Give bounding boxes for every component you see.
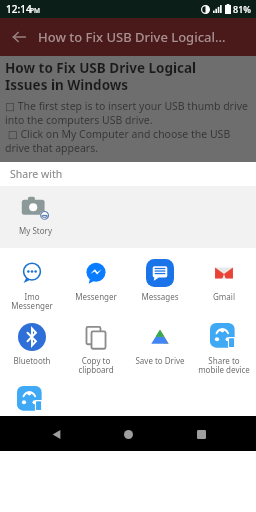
staticText: Copy to clipboard bbox=[78, 355, 114, 376]
button[interactable]: Back bbox=[0, 18, 38, 56]
button[interactable]: My Story bbox=[6, 190, 64, 238]
button[interactable]: Share to mobile device bbox=[192, 320, 256, 378]
staticText: PM bbox=[30, 6, 40, 15]
staticText: Bluetooth bbox=[13, 355, 51, 366]
button[interactable]: SHAREit bbox=[17, 386, 47, 416]
button[interactable]: Messages bbox=[128, 256, 192, 304]
staticText: How to Fix USB Drive Logical… bbox=[38, 28, 226, 46]
staticText: 12:14 bbox=[6, 2, 32, 16]
button[interactable]: Messenger bbox=[64, 256, 128, 304]
button[interactable]: Bluetooth bbox=[0, 320, 64, 368]
staticText: How to Fix USB Drive Logical Issues in W… bbox=[5, 59, 197, 94]
button[interactable]: Gmail bbox=[192, 256, 256, 304]
staticText: Share with bbox=[10, 167, 63, 181]
button[interactable]: Recent apps bbox=[184, 417, 218, 451]
staticText: Share to mobile device bbox=[198, 355, 250, 376]
staticText: 81% bbox=[233, 3, 251, 15]
button[interactable]: Home bbox=[111, 417, 145, 451]
staticText: □ The first step is to insert your USB t… bbox=[5, 99, 248, 155]
button[interactable]: Imo Messenger bbox=[0, 256, 64, 314]
staticText: My Story bbox=[19, 225, 52, 236]
staticText: Save to Drive bbox=[135, 355, 185, 366]
staticText: Messenger bbox=[75, 291, 117, 302]
button[interactable]: Save to Drive bbox=[128, 320, 192, 368]
staticText: Messages bbox=[141, 291, 179, 302]
button[interactable]: Copy to clipboard bbox=[64, 320, 128, 378]
staticText: Imo Messenger bbox=[11, 291, 53, 312]
button[interactable]: Back bbox=[39, 417, 73, 451]
staticText: Gmail bbox=[213, 291, 235, 302]
